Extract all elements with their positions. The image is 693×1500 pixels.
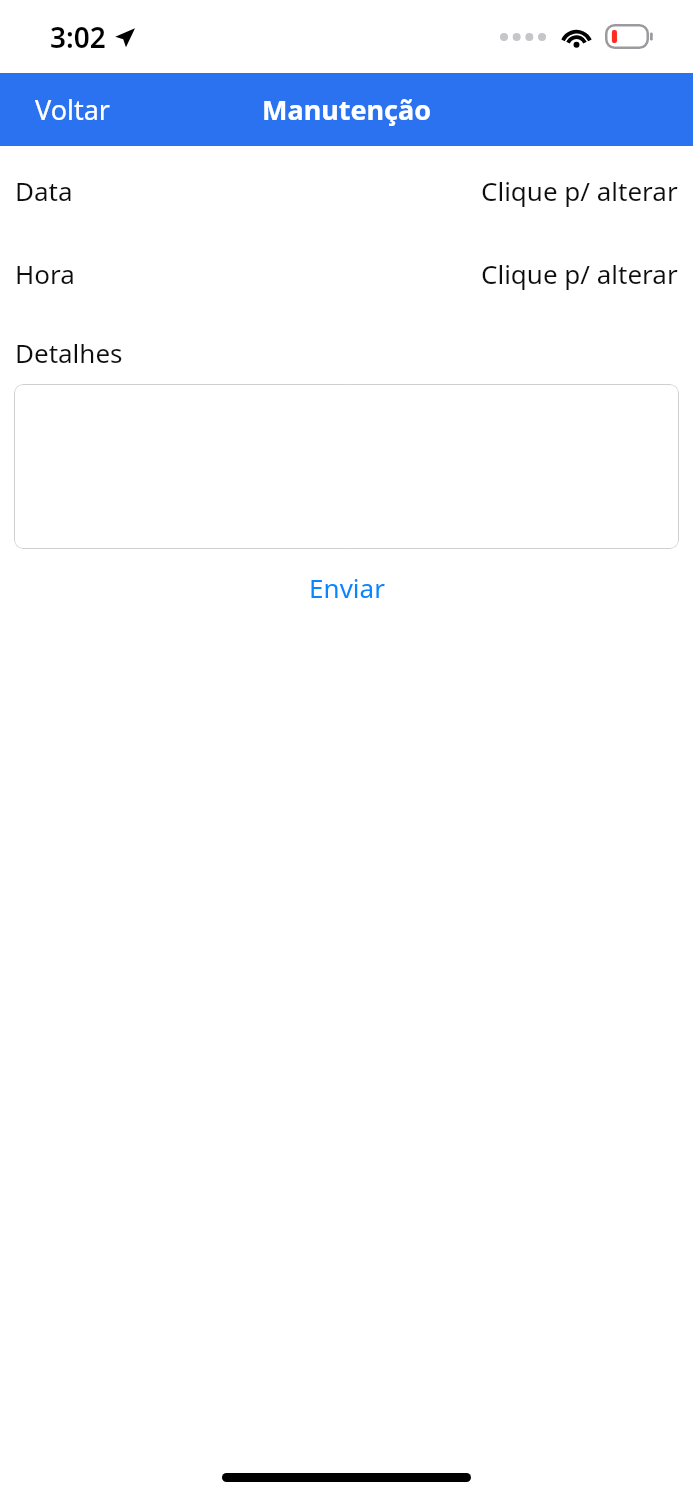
staticText: Manutenção <box>262 91 432 128</box>
staticText: Data <box>15 173 73 208</box>
staticText: Clique p/ alterar <box>481 256 678 291</box>
staticText: 3:02 <box>50 18 106 56</box>
button[interactable]: Enviar <box>0 561 693 613</box>
staticText: Hora <box>15 256 75 291</box>
button[interactable]: Data <box>0 168 693 212</box>
staticText: Enviar <box>309 570 385 605</box>
staticText: Detalhes <box>15 335 123 370</box>
staticText: Clique p/ alterar <box>481 173 678 208</box>
button[interactable]: Hora <box>0 251 693 295</box>
button[interactable]: Campo de detalhes <box>14 384 679 549</box>
button[interactable]: Voltar <box>0 73 135 146</box>
staticText: Voltar <box>35 91 111 128</box>
